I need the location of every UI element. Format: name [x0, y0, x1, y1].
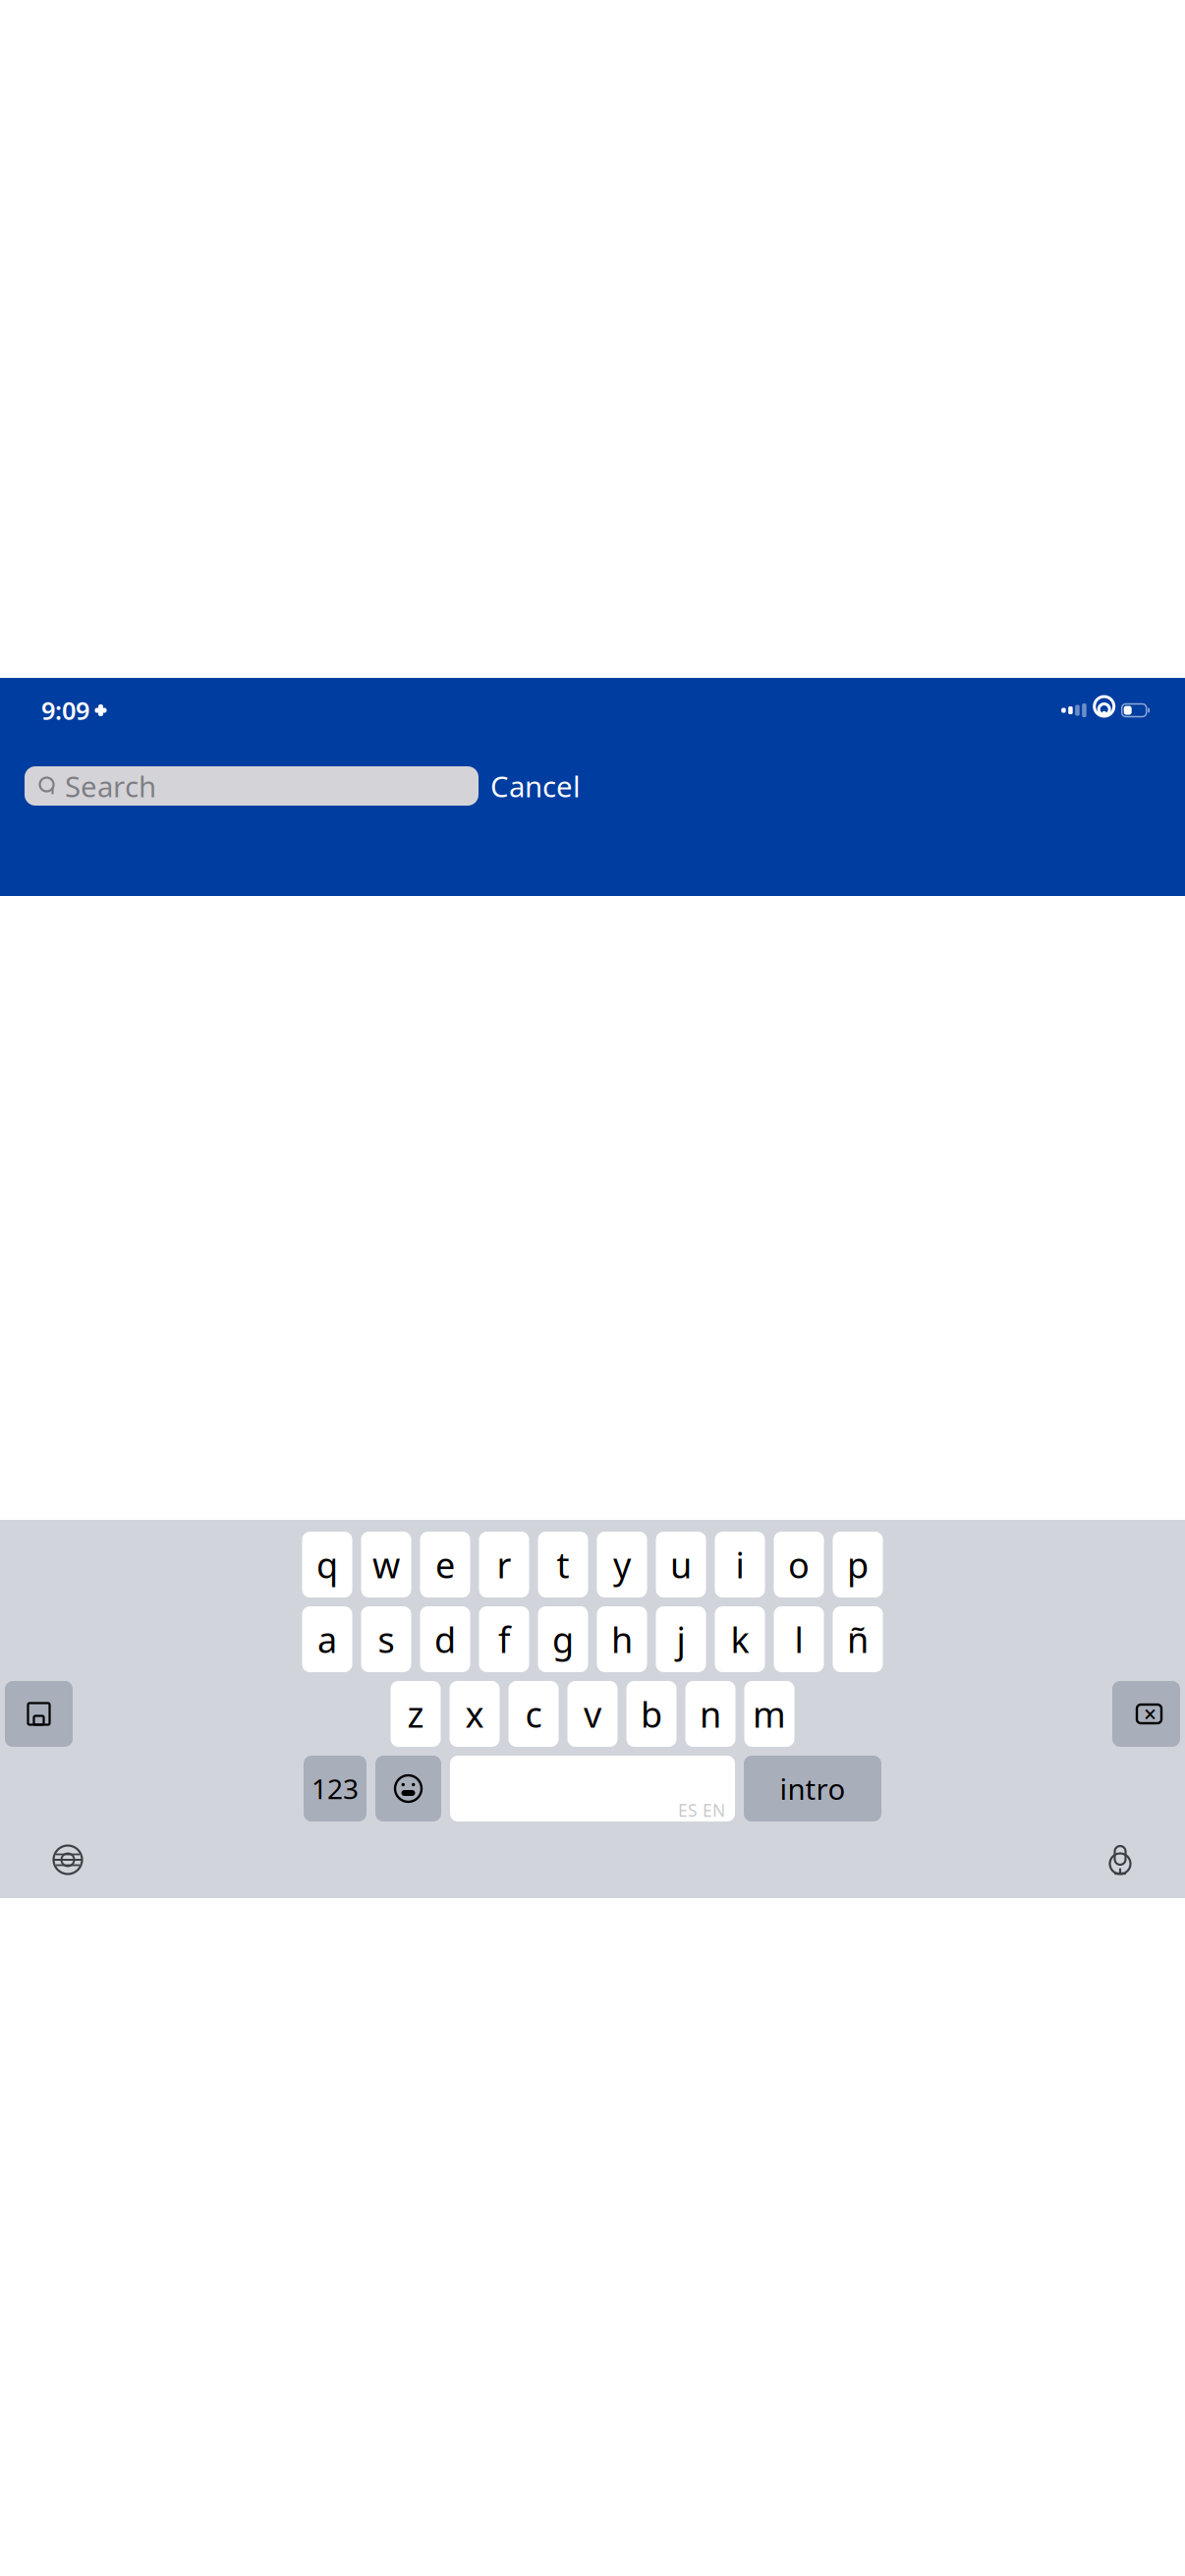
- staticText: e: [435, 1541, 455, 1588]
- staticText: 123: [311, 1770, 359, 1807]
- staticText: k: [731, 1616, 749, 1663]
- button[interactable]: s: [361, 1606, 411, 1672]
- staticText: r: [497, 1541, 511, 1588]
- button[interactable]: l: [774, 1606, 824, 1672]
- button[interactable]: a: [302, 1606, 352, 1672]
- button[interactable]: intro: [744, 1756, 881, 1821]
- button[interactable]: Emoji: [375, 1756, 441, 1821]
- button[interactable]: r: [479, 1532, 529, 1597]
- button[interactable]: Delete: [1112, 1681, 1180, 1747]
- button[interactable]: d: [420, 1606, 470, 1672]
- staticText: w: [372, 1541, 400, 1588]
- button[interactable]: m: [744, 1681, 794, 1747]
- staticText: Cancel: [490, 767, 581, 805]
- button[interactable]: o: [774, 1532, 824, 1597]
- staticText: u: [670, 1541, 692, 1588]
- staticText: t: [557, 1541, 569, 1588]
- staticText: y: [613, 1541, 631, 1588]
- button[interactable]: ñ: [833, 1606, 883, 1672]
- button[interactable]: p: [833, 1532, 883, 1597]
- button[interactable]: Space: [450, 1756, 735, 1821]
- button[interactable]: c: [508, 1681, 559, 1747]
- button[interactable]: g: [538, 1606, 588, 1672]
- button[interactable]: u: [656, 1532, 706, 1597]
- button[interactable]: Shift: [5, 1681, 73, 1747]
- staticText: ñ: [847, 1616, 869, 1663]
- button[interactable]: n: [685, 1681, 735, 1747]
- staticText: s: [378, 1616, 395, 1663]
- button[interactable]: h: [597, 1606, 647, 1672]
- staticText: intro: [780, 1769, 846, 1808]
- staticText: v: [584, 1690, 601, 1737]
- button[interactable]: j: [656, 1606, 706, 1672]
- button[interactable]: x: [450, 1681, 500, 1747]
- staticText: c: [525, 1690, 542, 1737]
- button[interactable]: v: [567, 1681, 618, 1747]
- button[interactable]: Next keyboard: [52, 1844, 84, 1876]
- staticText: n: [700, 1690, 721, 1737]
- staticText: z: [407, 1690, 424, 1737]
- staticText: h: [611, 1616, 633, 1663]
- staticText: 9:09: [41, 694, 89, 727]
- button[interactable]: i: [715, 1532, 765, 1597]
- staticText: ×: [1144, 1699, 1157, 1729]
- button[interactable]: 123: [304, 1756, 367, 1821]
- button[interactable]: w: [361, 1532, 411, 1597]
- staticText: p: [847, 1541, 869, 1588]
- button[interactable]: y: [597, 1532, 647, 1597]
- staticText: x: [465, 1690, 484, 1737]
- staticText: o: [788, 1541, 810, 1588]
- button[interactable]: b: [626, 1681, 677, 1747]
- staticText: a: [317, 1616, 337, 1663]
- button[interactable]: k: [715, 1606, 765, 1672]
- staticText: i: [735, 1541, 744, 1588]
- staticText: g: [552, 1616, 574, 1663]
- button[interactable]: f: [479, 1606, 529, 1672]
- staticText: d: [434, 1616, 456, 1663]
- staticText: b: [641, 1690, 662, 1737]
- button[interactable]: e: [420, 1532, 470, 1597]
- staticText: ES EN: [678, 1799, 725, 1821]
- button[interactable]: q: [302, 1532, 352, 1597]
- button[interactable]: Dictate: [1107, 1844, 1133, 1876]
- staticText: Search: [65, 767, 156, 805]
- staticText: l: [794, 1616, 803, 1663]
- staticText: m: [753, 1690, 786, 1737]
- staticText: f: [498, 1616, 510, 1663]
- staticText: q: [316, 1541, 338, 1588]
- button[interactable]: z: [391, 1681, 441, 1747]
- button[interactable]: t: [538, 1532, 588, 1597]
- staticText: j: [677, 1616, 685, 1663]
- button[interactable]: Cancel: [479, 764, 592, 808]
